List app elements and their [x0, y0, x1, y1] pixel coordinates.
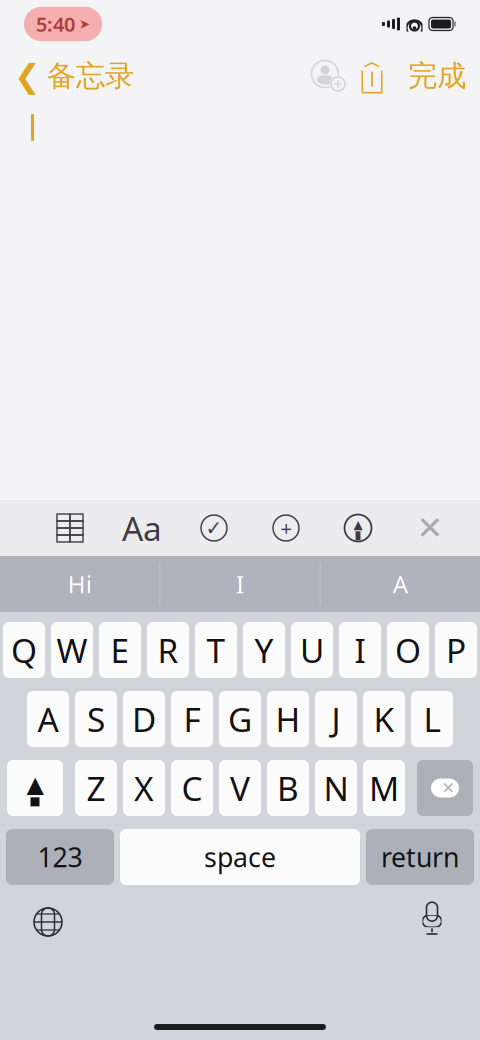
staticText: G	[228, 697, 252, 741]
staticText: X	[134, 766, 154, 810]
staticText: 备忘录	[47, 58, 134, 94]
button[interactable]: E	[99, 622, 141, 678]
staticText: ︿	[363, 51, 380, 73]
staticText: E	[110, 628, 129, 672]
button[interactable]: W	[51, 622, 93, 678]
staticText: A	[393, 568, 408, 600]
staticText: Hi	[68, 568, 92, 600]
staticText: ▲	[353, 518, 362, 531]
button[interactable]: I	[339, 622, 381, 678]
button[interactable]: Add People	[306, 56, 350, 96]
button[interactable]: Add Attachment	[264, 506, 308, 550]
button[interactable]: A	[27, 691, 69, 747]
button[interactable]: space	[120, 829, 360, 885]
button[interactable]: Y	[243, 622, 285, 678]
staticText: A	[37, 697, 58, 741]
staticText: ✓	[205, 517, 222, 539]
staticText: V	[230, 766, 250, 810]
button[interactable]: J	[315, 691, 357, 747]
staticText: U	[300, 628, 324, 672]
staticText: W	[56, 628, 87, 672]
staticText: I	[354, 628, 365, 672]
button[interactable]: I	[160, 556, 320, 612]
button[interactable]: L	[411, 691, 453, 747]
staticText: B	[277, 766, 299, 810]
button[interactable]: return	[366, 829, 474, 885]
button[interactable]: F	[171, 691, 213, 747]
staticText: P	[446, 628, 466, 672]
staticText: R	[157, 628, 178, 672]
button[interactable]: K	[363, 691, 405, 747]
button[interactable]: A	[321, 556, 480, 612]
button[interactable]: N	[315, 760, 357, 816]
staticText: J	[331, 697, 340, 741]
button[interactable]: Share	[350, 56, 394, 96]
button[interactable]: R	[147, 622, 189, 678]
staticText: L	[423, 697, 440, 741]
staticText: ➤	[79, 16, 90, 31]
staticText: ✕	[416, 510, 443, 546]
staticText: ❮	[14, 58, 41, 94]
button[interactable]: V	[219, 760, 261, 816]
staticText: C	[181, 766, 202, 810]
button[interactable]: Hide Keyboard	[408, 506, 452, 550]
staticText: M	[369, 766, 399, 810]
staticText: 123	[37, 839, 82, 875]
button[interactable]: G	[219, 691, 261, 747]
staticText: 5:40	[36, 11, 75, 37]
button[interactable]: 完成	[394, 50, 480, 102]
button[interactable]: Z	[75, 760, 117, 816]
staticText: Q	[11, 628, 37, 672]
staticText: Aa	[122, 506, 162, 550]
button[interactable]: Markup	[336, 506, 380, 550]
staticText: N	[323, 766, 348, 810]
staticText: K	[373, 697, 394, 741]
button[interactable]: C	[171, 760, 213, 816]
staticText: space	[204, 839, 276, 875]
button[interactable]: H	[267, 691, 309, 747]
staticText: O	[395, 628, 421, 672]
staticText: return	[381, 839, 459, 875]
button[interactable]: Next Keyboard	[24, 900, 72, 944]
staticText: Z	[86, 766, 105, 810]
staticText: I	[236, 568, 244, 600]
staticText: 完成	[408, 58, 466, 94]
button[interactable]: Hi	[0, 556, 159, 612]
staticText: T	[206, 628, 225, 672]
button[interactable]: T	[195, 622, 237, 678]
staticText: +	[333, 73, 342, 95]
button[interactable]: S	[75, 691, 117, 747]
button[interactable]: U	[291, 622, 333, 678]
button[interactable]: 123	[6, 829, 114, 885]
staticText: Y	[254, 628, 273, 672]
staticText: H	[275, 697, 300, 741]
button[interactable]: X	[123, 760, 165, 816]
staticText: ✕	[441, 779, 454, 797]
staticText: ▲	[26, 772, 43, 797]
button[interactable]: O	[387, 622, 429, 678]
staticText: D	[132, 697, 156, 741]
staticText: +	[280, 515, 291, 541]
button[interactable]: Table	[48, 506, 92, 550]
button[interactable]: D	[123, 691, 165, 747]
button[interactable]: Q	[3, 622, 45, 678]
button[interactable]: Checklist	[192, 506, 236, 550]
staticText: S	[87, 697, 105, 741]
button[interactable]: B	[267, 760, 309, 816]
button[interactable]: Shift	[7, 760, 63, 816]
button[interactable]: ❮	[0, 50, 134, 102]
button[interactable]: Delete	[417, 760, 473, 816]
button[interactable]: Text Format	[120, 506, 164, 550]
button[interactable]: M	[363, 760, 405, 816]
button[interactable]: P	[435, 622, 477, 678]
staticText: F	[183, 697, 200, 741]
button[interactable]: Dictation	[408, 900, 456, 944]
